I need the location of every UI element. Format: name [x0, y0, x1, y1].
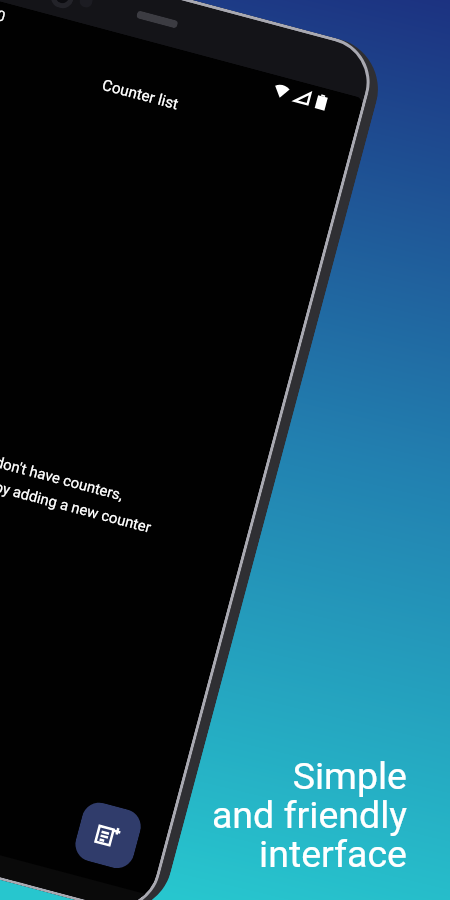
staticText: Simple and friendly interface	[211, 754, 407, 876]
staticText: Counter list	[100, 76, 180, 113]
staticText: You don't have counters, start by adding…	[0, 446, 159, 536]
button[interactable]: Add counter	[71, 799, 145, 872]
button[interactable]: Recents	[3, 867, 42, 887]
staticText: 10:00	[0, 0, 8, 26]
